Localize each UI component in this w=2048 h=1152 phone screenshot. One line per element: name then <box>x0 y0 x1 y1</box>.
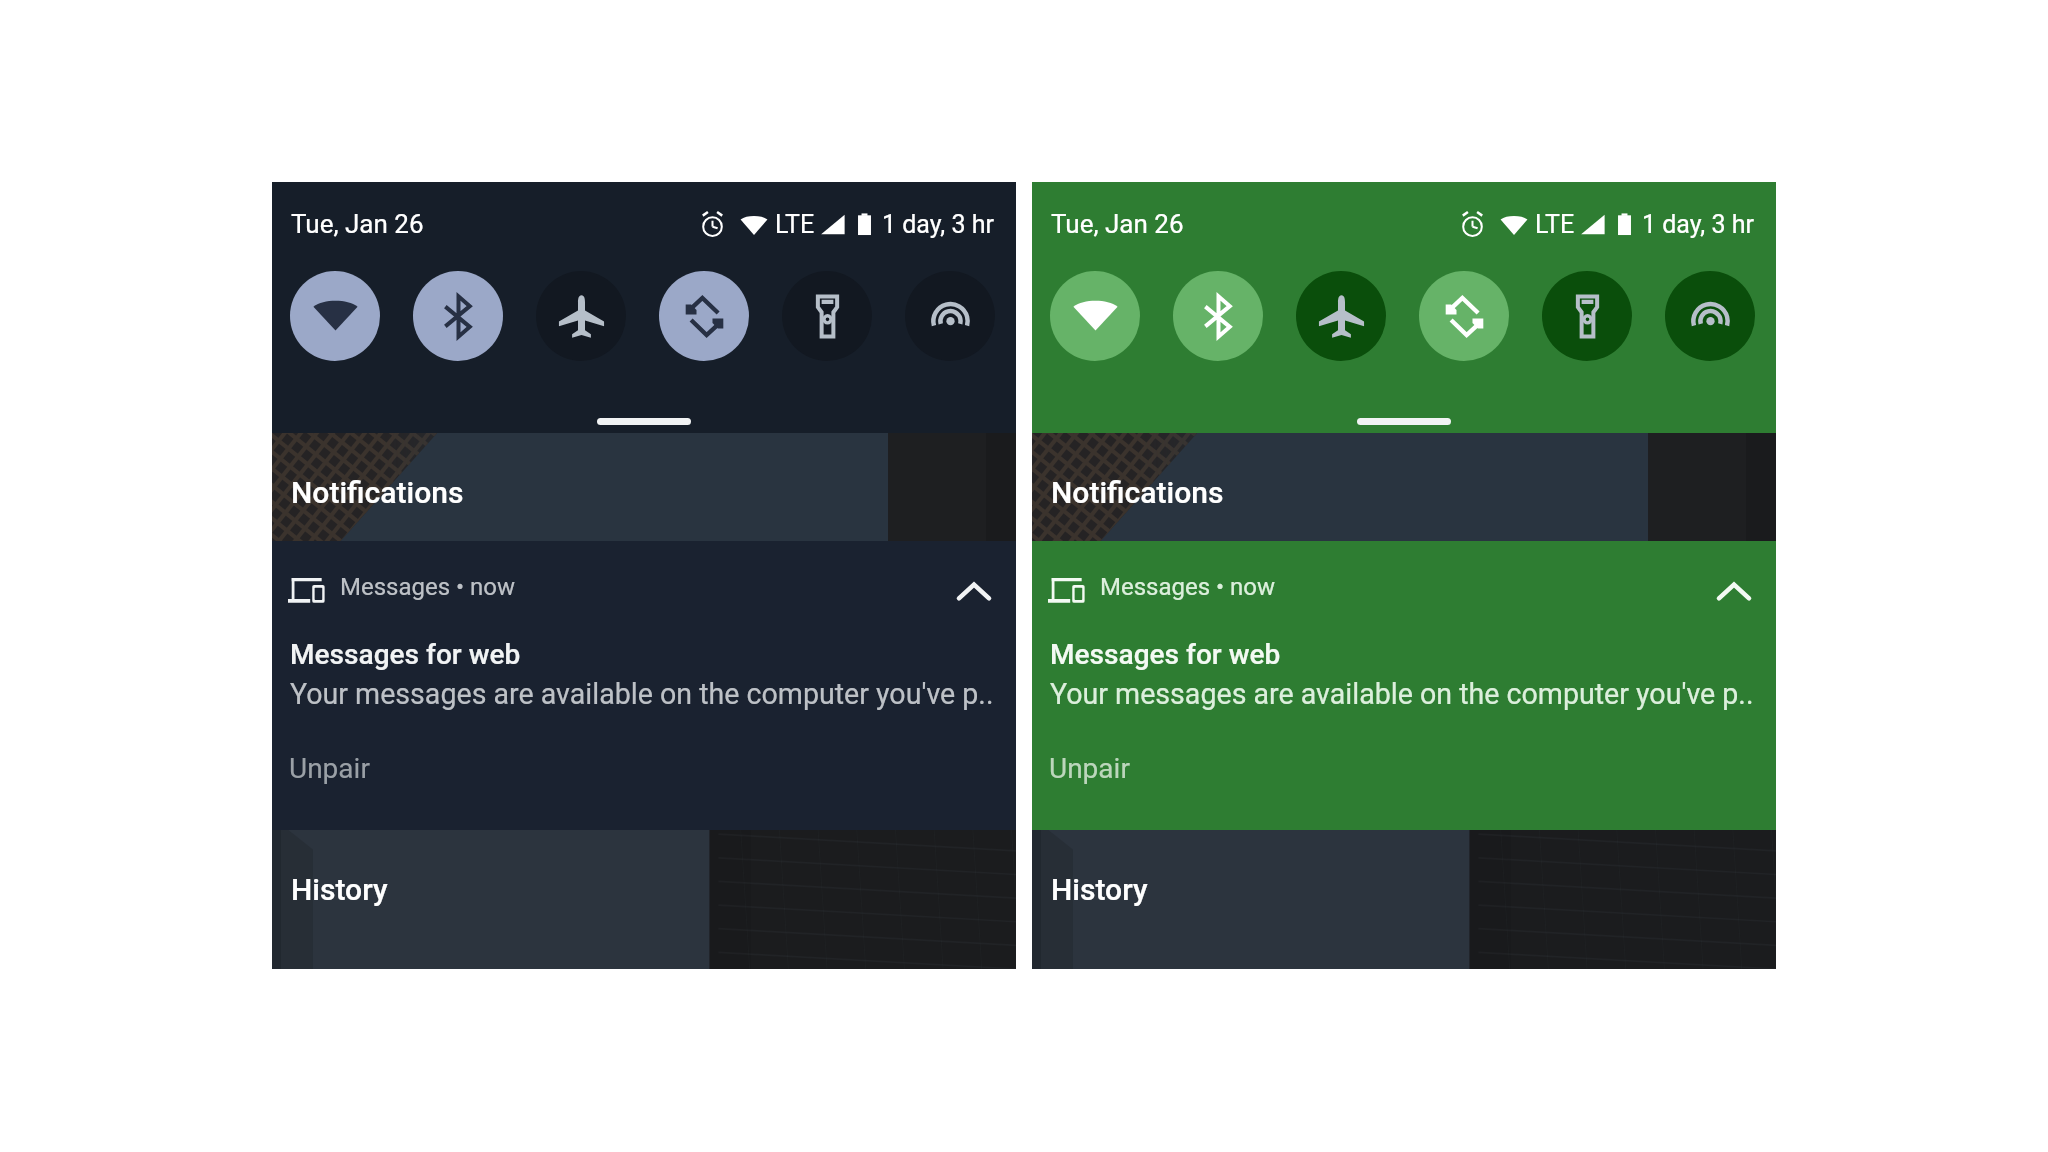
staticText: 1 day, 3 hr <box>882 210 994 239</box>
staticText: Messages • now <box>340 573 516 601</box>
other: Collapse <box>958 582 990 601</box>
staticText: Unpair <box>289 752 370 785</box>
button[interactable]: Messages • now <box>1032 541 1776 830</box>
staticText: Messages • now <box>1100 573 1276 601</box>
button[interactable]: Auto-rotate <box>1419 271 1509 361</box>
staticText: Your messages are available on the compu… <box>290 677 994 711</box>
button[interactable]: Unpair <box>278 741 398 795</box>
button[interactable]: Collapse notification <box>1704 563 1764 619</box>
staticText: Tue, Jan 26 <box>291 209 424 239</box>
button[interactable]: Wi-Fi <box>1050 271 1140 361</box>
button[interactable]: Hotspot <box>1665 271 1755 361</box>
staticText: Unpair <box>1049 752 1130 785</box>
button[interactable]: Collapse notification <box>944 563 1004 619</box>
staticText: Messages for web <box>1050 638 1281 671</box>
button[interactable]: Bluetooth <box>1173 271 1263 361</box>
button[interactable]: Notifications <box>1032 433 1776 541</box>
button[interactable]: Unpair <box>1038 741 1158 795</box>
button[interactable]: Airplane mode <box>536 271 626 361</box>
other: Collapse <box>1718 582 1750 601</box>
staticText: 1 day, 3 hr <box>1642 210 1754 239</box>
button[interactable]: Flashlight <box>1542 271 1632 361</box>
button[interactable]: Flashlight <box>782 271 872 361</box>
staticText: Messages for web <box>290 638 521 671</box>
button[interactable]: History <box>272 830 1016 969</box>
button[interactable]: Wi-Fi <box>290 271 380 361</box>
button[interactable]: Auto-rotate <box>659 271 749 361</box>
button[interactable]: History <box>1032 830 1776 969</box>
button[interactable]: Airplane mode <box>1296 271 1386 361</box>
staticText: History <box>291 872 388 907</box>
button[interactable]: Hotspot <box>905 271 995 361</box>
button[interactable]: Bluetooth <box>413 271 503 361</box>
staticText: Notifications <box>1051 475 1224 510</box>
staticText: Tue, Jan 26 <box>1051 209 1184 239</box>
staticText: Your messages are available on the compu… <box>1050 677 1754 711</box>
staticText: LTE <box>1535 210 1575 239</box>
staticText: Notifications <box>291 475 464 510</box>
staticText: History <box>1051 872 1148 907</box>
button[interactable]: Notifications <box>272 433 1016 541</box>
staticText: LTE <box>775 210 815 239</box>
button[interactable]: Messages • now <box>272 541 1016 830</box>
